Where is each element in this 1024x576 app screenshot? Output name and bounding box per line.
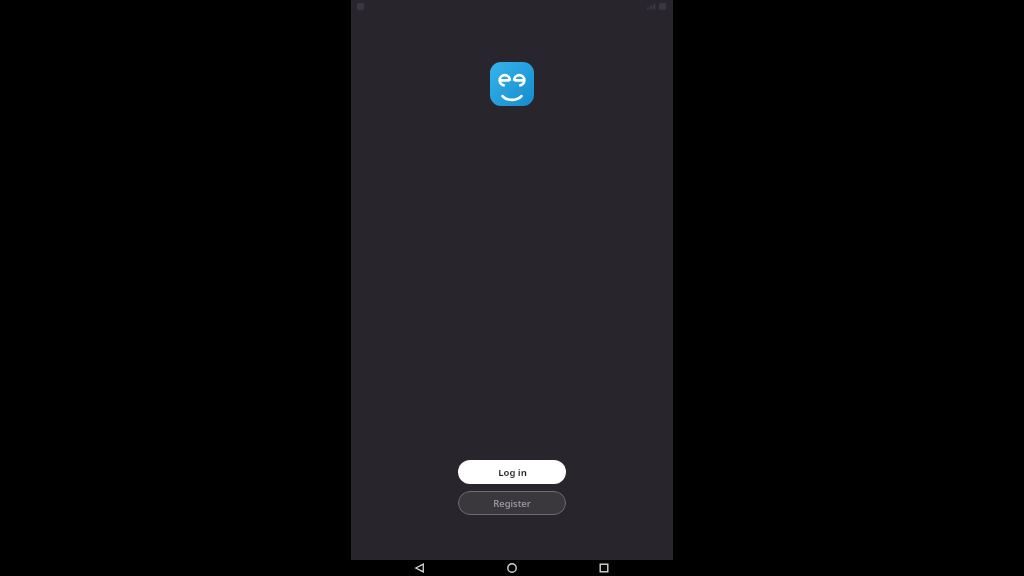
button[interactable]: Register [458, 491, 566, 515]
staticText: Log in [498, 466, 527, 479]
other: App logo [490, 62, 534, 106]
button[interactable]: Back [397, 560, 443, 576]
button[interactable]: Log in [458, 460, 566, 484]
button[interactable]: Recent apps [581, 560, 627, 576]
staticText: Register [493, 497, 531, 510]
button[interactable]: Home [489, 560, 535, 576]
